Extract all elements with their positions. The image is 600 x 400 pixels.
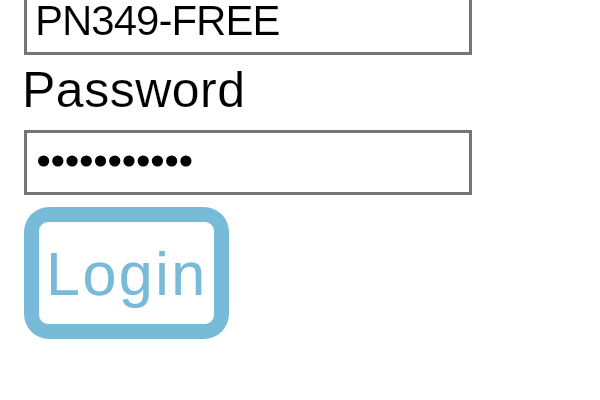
staticText: PN349-FREE [35,0,280,44]
staticText: Password [22,62,246,118]
staticText: Login [46,240,208,308]
button[interactable]: Account name field [24,0,472,55]
button[interactable]: Login [39,222,214,324]
button[interactable]: Password field [24,130,472,195]
